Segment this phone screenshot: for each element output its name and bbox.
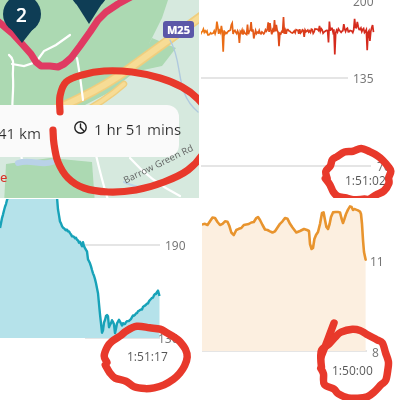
staticText: 1 hr 51 mins	[94, 119, 182, 139]
staticText: 1:51:02	[345, 172, 386, 188]
button[interactable]: 190	[0, 199, 199, 400]
staticText: 1:51:17	[127, 348, 168, 364]
button[interactable]: 41 km	[0, 105, 179, 157]
button[interactable]: 2	[0, 0, 199, 198]
staticText: 1:50:00	[332, 362, 373, 378]
staticText: 41 km	[0, 123, 42, 143]
staticText: 135	[353, 70, 374, 86]
staticText: 8	[372, 344, 379, 360]
staticText: 70	[377, 158, 391, 174]
staticText: 2	[16, 2, 27, 28]
staticText: Barrow Green Rd	[121, 141, 196, 186]
staticText: 130	[158, 330, 179, 346]
staticText: 11	[370, 253, 384, 269]
staticText: 190	[165, 237, 186, 253]
staticText: M25	[167, 22, 190, 37]
button[interactable]: 11	[202, 199, 400, 400]
button[interactable]: 200	[201, 0, 400, 198]
other: M25 motorway	[167, 22, 190, 37]
staticText: e	[0, 168, 8, 186]
staticText: 200	[353, 0, 374, 9]
